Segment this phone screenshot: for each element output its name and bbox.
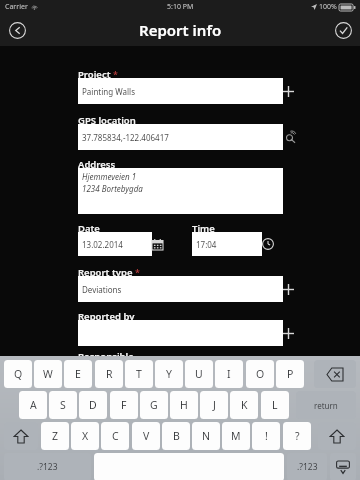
staticText: .?123: [37, 461, 58, 473]
staticText: 37.785834,-122.406417: [82, 132, 169, 143]
button[interactable]: Back: [6, 19, 28, 41]
button[interactable]: Y: [155, 360, 183, 388]
staticText: Deviations: [82, 284, 122, 295]
button[interactable]: F: [110, 391, 138, 419]
button[interactable]: K: [230, 391, 258, 419]
staticText: 1234 Bortebygda: [82, 183, 143, 194]
button[interactable]: C: [101, 422, 129, 450]
staticText: return: [314, 400, 338, 411]
button[interactable]: Shift: [4, 422, 38, 450]
button[interactable]: Backspace: [314, 360, 356, 388]
staticText: Report type: [78, 266, 133, 279]
button[interactable]: S: [49, 391, 77, 419]
button[interactable]: H: [170, 391, 198, 419]
button[interactable]: ?: [283, 422, 311, 450]
staticText: L: [272, 398, 278, 412]
button[interactable]: J: [200, 391, 228, 419]
staticText: T: [136, 367, 142, 381]
button[interactable]: U: [185, 360, 213, 388]
button[interactable]: P: [276, 360, 304, 388]
button[interactable]: Hjemmeveien 1: [78, 168, 283, 214]
staticText: I: [227, 367, 231, 381]
staticText: B: [173, 429, 180, 443]
button[interactable]: 37.785834,-122.406417: [78, 124, 283, 150]
staticText: GPS location: [78, 114, 136, 127]
staticText: A: [30, 398, 37, 412]
button[interactable]: Q: [4, 360, 32, 388]
button[interactable]: L: [261, 391, 289, 419]
button[interactable]: M: [222, 422, 250, 450]
button[interactable]: Hide keyboard: [330, 453, 356, 480]
staticText: V: [143, 429, 150, 443]
button[interactable]: G: [140, 391, 168, 419]
staticText: H: [180, 398, 188, 412]
staticText: Address: [78, 158, 116, 171]
button[interactable]: .?123: [4, 453, 91, 480]
button[interactable]: Z: [41, 422, 69, 450]
button[interactable]: O: [246, 360, 274, 388]
button[interactable]: R: [95, 360, 123, 388]
button[interactable]: X: [71, 422, 99, 450]
button[interactable]: I: [215, 360, 243, 388]
button[interactable]: T: [125, 360, 153, 388]
button[interactable]: 17:04: [192, 232, 262, 256]
staticText: 17:04: [196, 239, 217, 250]
staticText: R: [106, 367, 113, 381]
button[interactable]: D: [79, 391, 107, 419]
button[interactable]: W: [34, 360, 62, 388]
button[interactable]: N: [192, 422, 220, 450]
staticText: W: [43, 367, 53, 381]
staticText: 5:10 PM: [167, 2, 194, 12]
staticText: Carrier: [5, 2, 28, 12]
button[interactable]: E: [64, 360, 92, 388]
button[interactable]: V: [132, 422, 160, 450]
staticText: Y: [166, 367, 172, 381]
staticText: Hjemmeveien 1: [82, 171, 137, 182]
button[interactable]: Painting Walls: [78, 78, 283, 104]
staticText: Q: [14, 367, 23, 381]
staticText: *: [113, 68, 118, 80]
staticText: U: [195, 367, 203, 381]
staticText: Report info: [139, 20, 222, 40]
button[interactable]: !: [252, 422, 280, 450]
button[interactable]: 13.02.2014: [78, 232, 152, 256]
staticText: C: [112, 429, 119, 443]
staticText: N: [202, 429, 210, 443]
staticText: S: [60, 398, 66, 412]
staticText: Reported by: [78, 310, 135, 323]
staticText: *: [135, 266, 140, 278]
button[interactable]: Pick date: [148, 235, 166, 253]
button[interactable]: Get GPS location: [281, 128, 299, 146]
staticText: E: [75, 367, 81, 381]
staticText: Z: [52, 429, 59, 443]
staticText: P: [287, 367, 294, 381]
button[interactable]: Deviations: [78, 276, 283, 302]
staticText: K: [241, 398, 248, 412]
staticText: .?123: [297, 461, 318, 473]
button[interactable]: .?123: [287, 453, 327, 480]
staticText: Painting Walls: [82, 86, 135, 97]
button[interactable]: Confirm: [332, 19, 354, 41]
button[interactable]: return: [296, 391, 356, 419]
staticText: Date: [78, 222, 100, 235]
staticText: O: [256, 367, 265, 381]
staticText: G: [150, 398, 158, 412]
button[interactable]: A: [19, 391, 47, 419]
staticText: Responsible: [78, 350, 134, 363]
staticText: 13.02.2014: [82, 239, 123, 250]
button[interactable]: Add: [279, 280, 297, 298]
staticText: J: [213, 398, 216, 412]
button[interactable]: Pick time: [259, 235, 277, 253]
button[interactable]: B: [162, 422, 190, 450]
staticText: !: [265, 429, 268, 443]
button[interactable]: Shift: [318, 422, 356, 450]
staticText: X: [82, 429, 89, 443]
staticText: F: [121, 398, 127, 412]
button[interactable]: Add: [279, 324, 297, 342]
button[interactable]: Add: [279, 82, 297, 100]
staticText: D: [89, 398, 97, 412]
staticText: ?: [295, 429, 300, 443]
staticText: M: [231, 429, 241, 443]
